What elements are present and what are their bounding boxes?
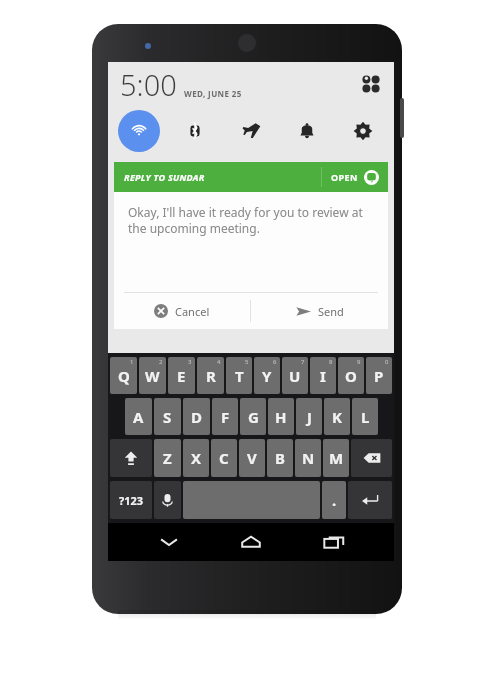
button[interactable]: P [366,357,392,394]
staticText: B [275,448,285,468]
staticText: Send [318,304,344,319]
other: Shift [110,439,152,477]
button[interactable]: Shift [110,439,152,477]
staticText: M [329,448,344,468]
button[interactable]: Y [254,357,280,394]
button[interactable]: R [197,357,224,394]
staticText: 6 [273,358,277,366]
staticText: Z [163,448,172,468]
button[interactable]: Notifications [286,110,328,152]
button[interactable]: W [139,357,166,394]
button[interactable]: A [125,398,152,435]
button[interactable]: M [323,439,349,477]
staticText: WED, JUNE 25 [184,88,242,99]
staticText: 0 [385,358,389,366]
button[interactable]: Airplane mode [230,110,272,152]
button[interactable]: Cancel [114,293,250,329]
staticText: T [235,366,244,386]
staticText: S [163,407,172,427]
staticText: I [320,366,326,386]
staticText: A [133,407,144,427]
button[interactable]: Wi-Fi [118,110,160,152]
staticText: 5 [245,358,249,366]
staticText: C [219,448,229,468]
button[interactable]: G [240,398,266,435]
staticText: J [307,407,312,427]
button[interactable]: F [212,398,238,435]
staticText: 7 [301,358,305,366]
staticText: X [191,448,202,468]
button[interactable]: Send [251,293,388,329]
button[interactable]: Settings [342,110,384,152]
button[interactable]: V [239,439,265,477]
staticText: 1 [130,358,134,366]
staticText: F [221,407,230,427]
staticText: 4 [217,358,221,366]
staticText: V [247,448,257,468]
button[interactable]: ?123 [110,481,152,519]
button[interactable]: O [338,357,364,394]
button[interactable]: Z [154,439,181,477]
staticText: G [248,407,259,427]
staticText: E [177,366,186,386]
staticText: Q [118,366,130,386]
other: Backspace [351,439,392,477]
staticText: Okay, I'll have it ready for you to revi… [128,204,374,236]
other: Enter [348,481,392,519]
staticText: 2 [159,358,163,366]
staticText: Y [262,366,272,386]
button[interactable]: C [211,439,237,477]
button[interactable]: OPEN [331,162,379,192]
staticText: 8 [329,358,333,366]
staticText: ?123 [119,493,144,508]
staticText: R [206,366,216,386]
staticText: D [191,407,202,427]
button[interactable]: E [168,357,195,394]
staticText: N [302,448,315,468]
button[interactable]: J [296,398,322,435]
button[interactable]: B [267,439,293,477]
staticText: W [145,366,160,386]
button[interactable]: User / quick settings [358,71,384,97]
staticText: K [332,407,342,427]
button[interactable]: X [183,439,209,477]
button[interactable]: . [322,481,346,519]
button[interactable]: Back [147,523,191,561]
staticText: 9 [357,358,361,366]
staticText: REPLY TO SUNDAR [124,171,205,183]
button[interactable]: N [295,439,321,477]
button[interactable]: Backspace [351,439,392,477]
staticText: P [374,366,384,386]
button[interactable]: Enter [348,481,392,519]
button[interactable]: Home [229,523,273,561]
staticText: 3 [188,358,192,366]
button[interactable]: Recent apps [312,523,356,561]
button[interactable]: Voice input [154,481,181,519]
button[interactable]: L [352,398,378,435]
staticText: Cancel [175,304,210,319]
staticText: L [361,407,370,427]
other: Voice input [154,481,181,519]
staticText: 5:00 [120,65,177,104]
button[interactable]: H [268,398,294,435]
button[interactable]: K [324,398,350,435]
button[interactable]: T [226,357,252,394]
button[interactable]: Bluetooth [174,110,216,152]
button[interactable]: D [183,398,210,435]
button[interactable]: S [154,398,181,435]
button[interactable]: Q [110,357,137,394]
staticText: U [289,366,301,386]
staticText: . [332,490,337,510]
staticText: H [275,407,287,427]
button[interactable]: U [282,357,308,394]
staticText: O [345,366,357,386]
staticText: OPEN [331,171,358,183]
button[interactable]: I [310,357,336,394]
